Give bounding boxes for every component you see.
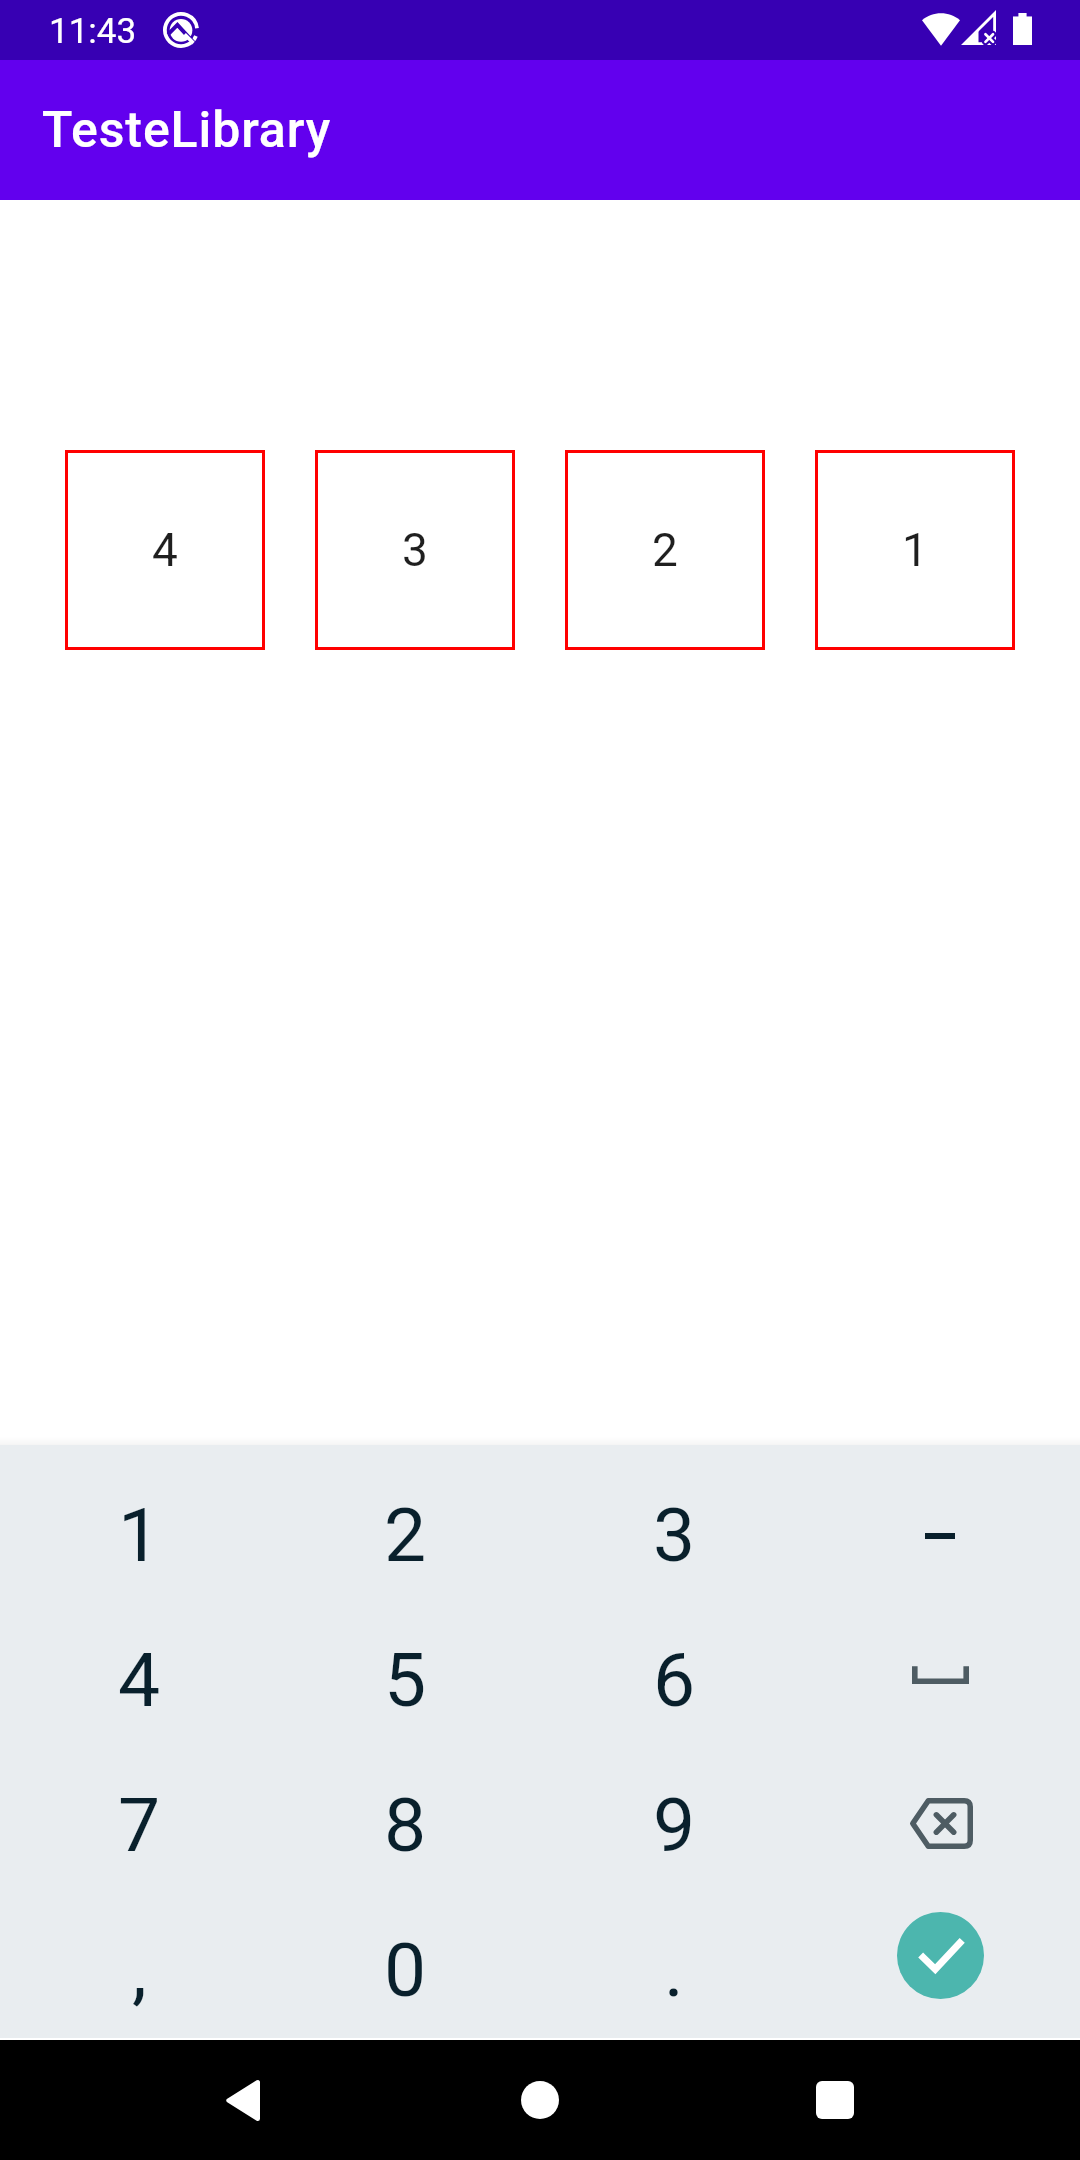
staticText: 11:43	[49, 11, 137, 52]
staticText: 1	[902, 523, 928, 577]
button[interactable]: Back	[182, 2040, 302, 2160]
button[interactable]: 6	[541, 1607, 807, 1752]
button[interactable]: .	[541, 1897, 807, 2042]
button[interactable]: 4	[6, 1607, 272, 1752]
staticText: 8	[384, 1781, 427, 1869]
staticText: 2	[384, 1491, 427, 1579]
button[interactable]: 1	[6, 1462, 272, 1607]
staticText: 7	[118, 1781, 161, 1869]
button[interactable]: 3	[315, 450, 515, 650]
staticText: 0	[384, 1926, 427, 2014]
staticText: 3	[402, 523, 428, 577]
button[interactable]: Space	[807, 1607, 1073, 1752]
button[interactable]: Done	[807, 1897, 1073, 2042]
staticText: 2	[652, 523, 678, 577]
staticText: 5	[384, 1636, 427, 1724]
button[interactable]: 4	[65, 450, 265, 650]
other: Space	[912, 1669, 969, 1684]
button[interactable]: Recent apps	[775, 2040, 895, 2160]
button[interactable]: Home	[480, 2040, 600, 2160]
button[interactable]: 1	[815, 450, 1015, 650]
button[interactable]: 8	[272, 1752, 538, 1897]
staticText: TesteLibrary	[42, 101, 332, 160]
staticText: 6	[653, 1636, 696, 1724]
staticText: .	[664, 1926, 684, 2014]
button[interactable]: ,	[6, 1897, 272, 2042]
button[interactable]: 7	[6, 1752, 272, 1897]
other: Backspace	[910, 1798, 973, 1849]
button[interactable]: 0	[272, 1897, 538, 2042]
button[interactable]: Backspace	[807, 1752, 1073, 1897]
button[interactable]: 5	[272, 1607, 538, 1752]
staticText: 3	[653, 1491, 696, 1579]
staticText: 9	[653, 1781, 696, 1869]
staticText: 4	[152, 523, 178, 577]
button[interactable]: Minus	[807, 1462, 1073, 1607]
button[interactable]: 3	[541, 1462, 807, 1607]
button[interactable]: Done	[897, 1912, 984, 1999]
staticText: 4	[118, 1636, 161, 1724]
button[interactable]: 2	[272, 1462, 538, 1607]
button[interactable]: 2	[565, 450, 765, 650]
button[interactable]: 9	[541, 1752, 807, 1897]
staticText: 1	[118, 1491, 161, 1579]
staticText: ,	[132, 1926, 147, 2014]
